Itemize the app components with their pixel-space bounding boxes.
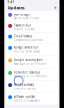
- button[interactable]: Cloud backup: [6, 33, 58, 43]
- staticText: Invoice is ready: [14, 27, 35, 31]
- staticText: 9:41: [7, 0, 14, 4]
- button[interactable]: Weekly summary: [6, 81, 58, 92]
- button[interactable]: Storage almost full: [6, 43, 58, 55]
- button[interactable]: Google security alert: [6, 56, 58, 68]
- staticText: Weekly summary: [14, 83, 34, 86]
- staticText: New message: [14, 13, 31, 16]
- staticText: Updates: [7, 5, 24, 10]
- staticText: Google security alert: [14, 58, 43, 62]
- staticText: iOS 18.2 is available: [14, 99, 41, 102]
- staticText: View your activity: [14, 87, 36, 90]
- button[interactable]: Software update: [6, 93, 58, 105]
- staticText: Meeting in 10 minutes: [14, 75, 47, 78]
- staticText: Software update: [14, 95, 36, 98]
- button[interactable]: Payment due: [6, 22, 58, 33]
- staticText: New sign-in on iPhone: [14, 62, 47, 66]
- button[interactable]: Reminder: standup: [6, 68, 58, 80]
- staticText: Reminder: standup: [14, 71, 41, 74]
- staticText: Payment due: [14, 24, 32, 27]
- staticText: Tap to read it now: [14, 16, 39, 20]
- staticText: Free up some space: [14, 50, 41, 53]
- button[interactable]: New message: [6, 11, 58, 22]
- button[interactable]: More: [54, 7, 56, 9]
- staticText: Storage almost full: [14, 46, 39, 49]
- staticText: Completed just now: [14, 38, 43, 42]
- staticText: Cloud backup: [14, 34, 33, 38]
